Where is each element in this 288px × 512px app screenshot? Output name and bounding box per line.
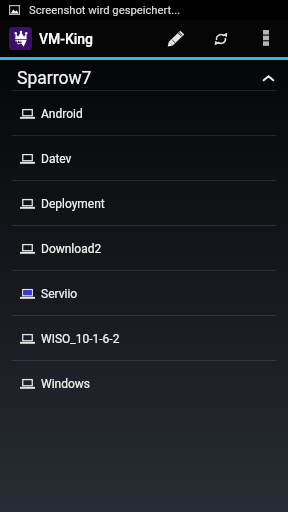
- button[interactable]: Refresh: [198, 20, 243, 57]
- button[interactable]: Edit: [153, 20, 198, 57]
- button[interactable]: Sparrow7: [0, 60, 288, 91]
- button[interactable]: Download2: [0, 226, 288, 271]
- button[interactable]: Deployment: [0, 181, 288, 226]
- button[interactable]: Android: [0, 91, 288, 136]
- staticText: Android: [41, 107, 83, 121]
- staticText: Windows: [41, 377, 91, 391]
- staticText: VM-King: [39, 31, 94, 47]
- button[interactable]: More options: [243, 20, 288, 57]
- staticText: Deployment: [41, 197, 105, 211]
- button[interactable]: Windows: [0, 361, 288, 406]
- staticText: Screenshot wird gespeichert...: [29, 4, 181, 17]
- button[interactable]: Serviio: [0, 271, 288, 316]
- staticText: Sparrow7: [17, 68, 92, 89]
- staticText: Download2: [41, 242, 102, 256]
- staticText: WISO_10-1-6-2: [41, 332, 120, 346]
- button[interactable]: Datev: [0, 136, 288, 181]
- button[interactable]: WISO_10-1-6-2: [0, 316, 288, 361]
- staticText: Datev: [41, 152, 72, 166]
- staticText: Serviio: [41, 287, 78, 301]
